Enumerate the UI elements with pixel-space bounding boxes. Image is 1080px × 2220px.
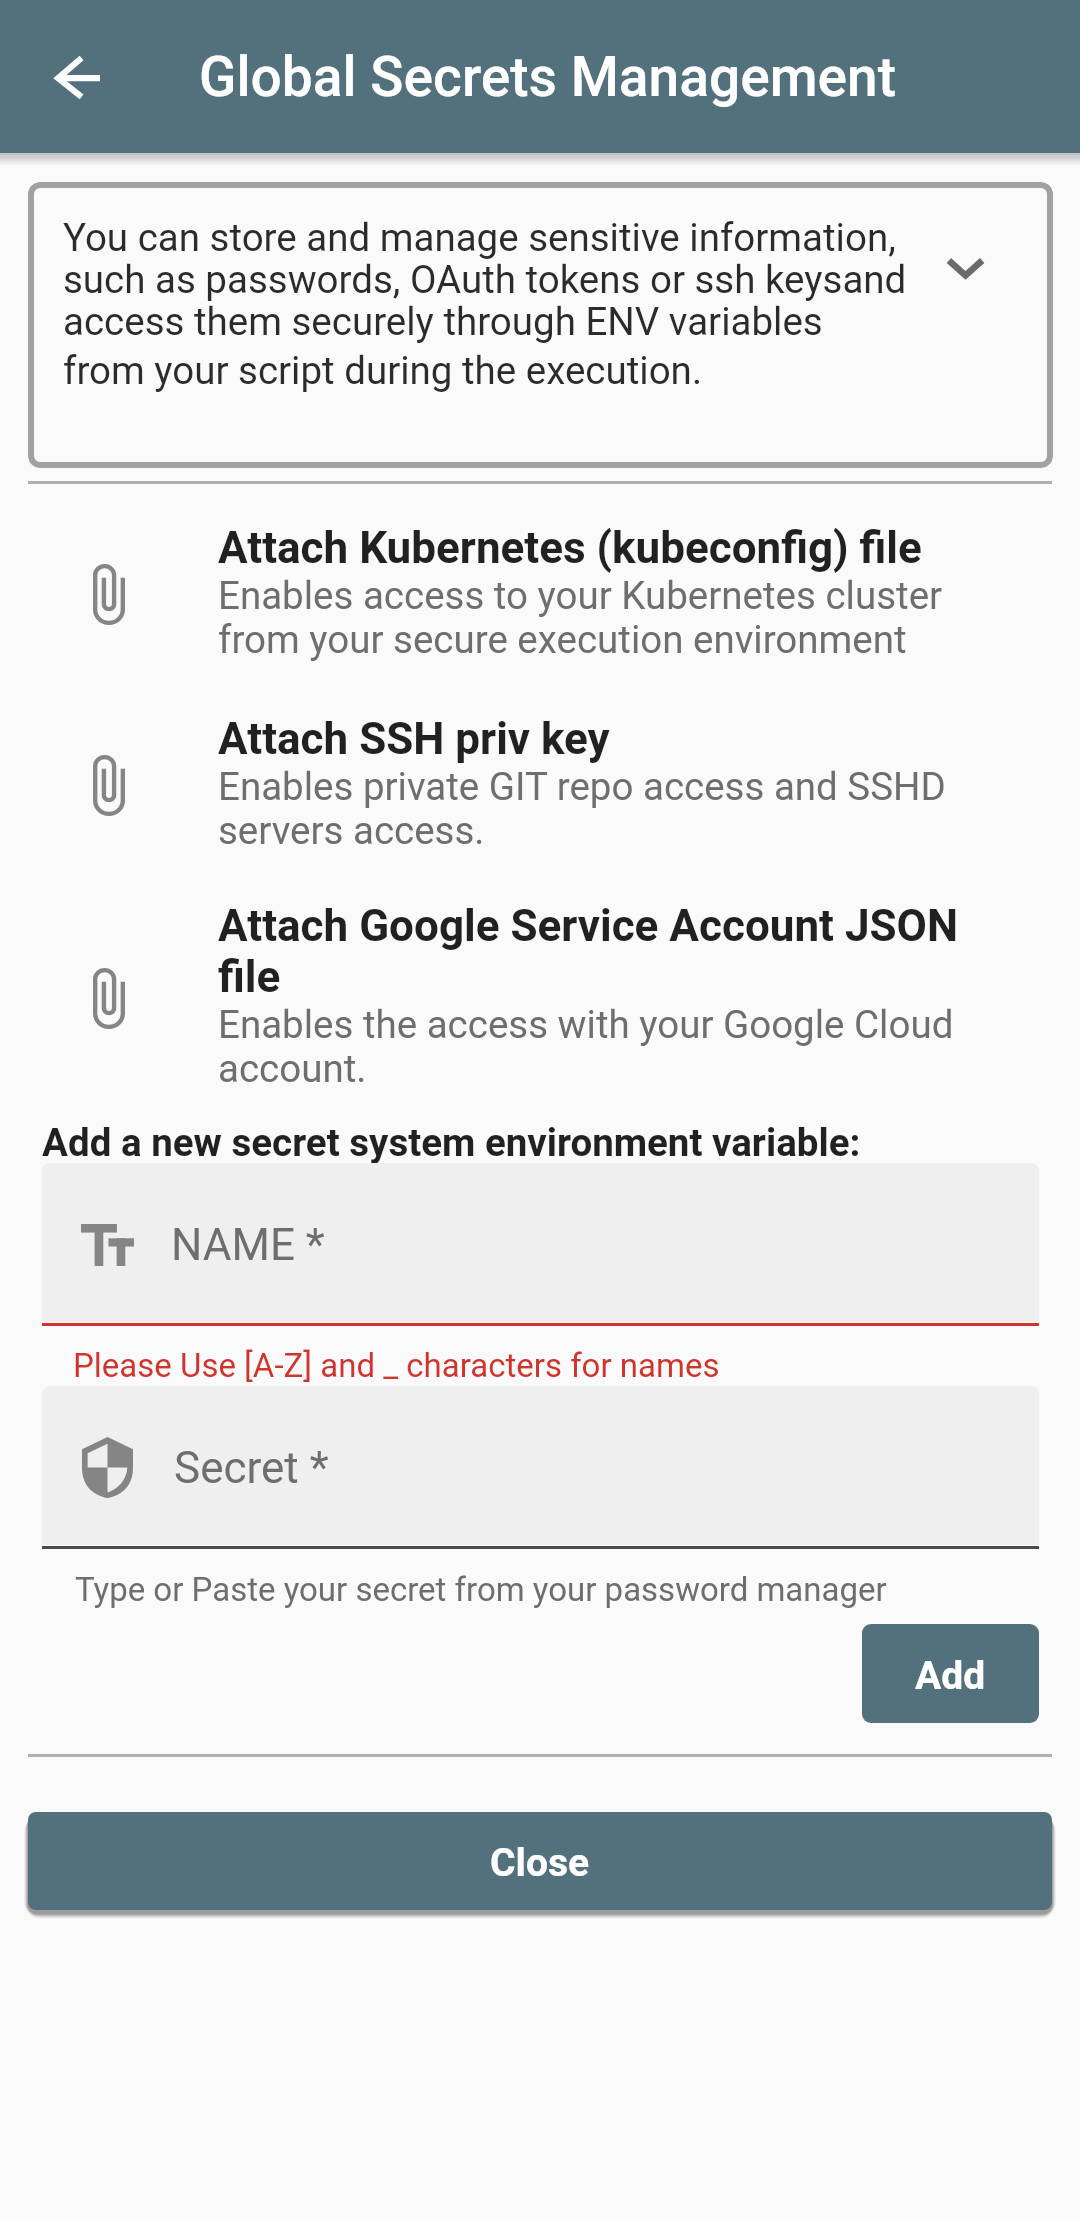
button[interactable]: Attach Google Service Account JSON file	[0, 901, 1080, 1095]
staticText: Attach Kubernetes (kubeconfig) file	[218, 523, 922, 574]
staticText: Global Secrets Management	[199, 45, 896, 109]
button[interactable]: Back	[31, 31, 123, 123]
staticText: NAME *	[171, 1219, 325, 1271]
staticText: Add a new secret system environment vari…	[42, 1118, 861, 1166]
staticText: from your script during the execution.	[63, 350, 703, 392]
staticText: Type or Paste your secret from your pass…	[75, 1568, 887, 1610]
button[interactable]: Add	[862, 1624, 1039, 1723]
button[interactable]: You can store and manage sensitive infor…	[28, 182, 1053, 468]
button[interactable]: Secret *	[42, 1386, 1039, 1545]
button[interactable]: Attach SSH priv key	[0, 714, 1080, 856]
staticText: Close	[490, 1840, 590, 1886]
staticText: Please Use [A-Z] and _ characters for na…	[73, 1344, 720, 1386]
staticText: Secret *	[174, 1442, 329, 1494]
button[interactable]: Collapse	[915, 219, 1015, 319]
staticText: You can store and manage sensitive infor…	[63, 217, 907, 343]
staticText: Attach SSH priv key	[218, 714, 610, 765]
staticText: Enables the access with your Google Clou…	[218, 1003, 954, 1091]
staticText: Enables private GIT repo access and SSHD…	[218, 765, 946, 853]
button[interactable]: Close	[28, 1812, 1052, 1910]
staticText: Add	[915, 1653, 986, 1699]
staticText: Attach Google Service Account JSON file	[218, 901, 958, 1003]
button[interactable]: NAME *	[42, 1163, 1039, 1322]
staticText: Enables access to your Kubernetes cluste…	[218, 574, 943, 662]
button[interactable]: Attach Kubernetes (kubeconfig) file	[0, 523, 1080, 665]
